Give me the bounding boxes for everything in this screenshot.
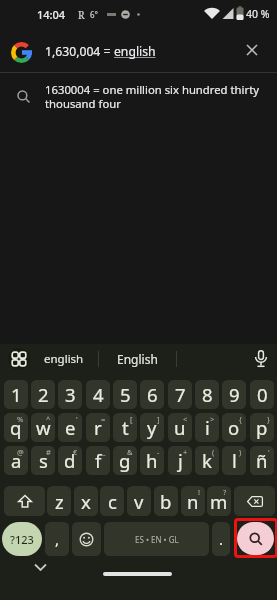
button[interactable]: z [47, 486, 71, 516]
staticText: - [157, 447, 160, 457]
button[interactable]: 3 [58, 380, 82, 409]
button[interactable]: 9 [222, 380, 246, 409]
button[interactable]: v [127, 486, 151, 516]
staticText: @ [17, 447, 24, 457]
button[interactable]: o [222, 413, 246, 442]
staticText: > [210, 414, 215, 424]
staticText: s [39, 448, 48, 473]
staticText: e [65, 415, 76, 440]
button[interactable]: m [207, 486, 231, 516]
staticText: ñ [256, 448, 268, 473]
button[interactable]: , [45, 522, 69, 556]
staticText: l [232, 448, 237, 473]
staticText: 1 [11, 382, 22, 407]
button[interactable] [253, 350, 269, 369]
staticText: [ [130, 414, 133, 424]
button[interactable]: h [140, 446, 164, 475]
button[interactable]: n [181, 486, 205, 516]
button[interactable] [0, 76, 277, 118]
button[interactable]: d [58, 446, 82, 475]
button[interactable]: ñ [250, 446, 274, 475]
staticText: v [134, 489, 144, 514]
button[interactable] [245, 43, 259, 57]
staticText: 4 [93, 382, 104, 407]
staticText: m [210, 489, 228, 514]
button[interactable]: ?123 [2, 522, 42, 556]
staticText: ES • EN • GL [135, 534, 179, 545]
staticText: 6 [147, 382, 158, 407]
button[interactable]: 2 [31, 380, 55, 409]
staticText: h [146, 448, 158, 473]
button[interactable]: 1 [4, 380, 28, 409]
staticText: # [46, 447, 51, 457]
button[interactable] [8, 348, 30, 370]
button[interactable]: x [74, 486, 98, 516]
staticText: 6° [90, 9, 98, 20]
button[interactable]: j [168, 446, 192, 475]
staticText: . [219, 529, 224, 549]
staticText: d [64, 448, 76, 473]
staticText: f [95, 448, 102, 473]
button[interactable]: 5 [113, 380, 137, 409]
staticText: & [127, 447, 133, 457]
button[interactable]: 7 [168, 380, 192, 409]
staticText: ( [212, 447, 215, 457]
button[interactable]: g [113, 446, 137, 475]
staticText: ! [198, 487, 201, 497]
staticText: ] [157, 414, 160, 424]
staticText: g [119, 448, 131, 473]
button[interactable]: y [140, 413, 164, 442]
staticText: j [178, 448, 183, 473]
button[interactable]: 0 [250, 380, 274, 409]
staticText: ? [223, 487, 227, 497]
staticText: 0 [257, 382, 268, 407]
button[interactable]: English [110, 344, 165, 374]
button[interactable]: c [100, 486, 124, 516]
staticText: < [183, 414, 188, 424]
button[interactable]: . [212, 522, 230, 556]
button[interactable] [237, 522, 274, 555]
staticText: i [205, 415, 210, 440]
button[interactable]: 6 [140, 380, 164, 409]
staticText: b [160, 489, 172, 514]
staticText: r [94, 415, 102, 440]
button[interactable] [234, 486, 275, 516]
button[interactable]: 1,630,004 = [45, 43, 156, 60]
button[interactable]: e [58, 413, 82, 442]
button[interactable] [11, 42, 32, 63]
button[interactable]: a [4, 446, 28, 475]
staticText: n [187, 489, 199, 514]
button[interactable]: r [86, 413, 110, 442]
staticText: € [73, 447, 78, 457]
staticText: = [101, 414, 106, 424]
button[interactable]: t [113, 413, 137, 442]
button[interactable]: english [36, 344, 91, 374]
button[interactable] [34, 563, 47, 573]
button[interactable] [4, 486, 45, 516]
button[interactable]: f [86, 446, 110, 475]
button[interactable] [72, 522, 101, 556]
button[interactable]: i [195, 413, 219, 442]
staticText: p [256, 415, 268, 440]
button[interactable]: k [195, 446, 219, 475]
staticText: 1630004 = one million six hundred thirty… [45, 82, 259, 111]
staticText: 40 % [246, 7, 270, 21]
button[interactable]: p [250, 413, 274, 442]
button[interactable]: w [31, 413, 55, 442]
button[interactable]: 4 [86, 380, 110, 409]
staticText: English [117, 351, 158, 367]
staticText: 5 [120, 382, 131, 407]
staticText: + [183, 447, 188, 457]
button[interactable]: s [31, 446, 55, 475]
button[interactable]: q [4, 413, 28, 442]
button[interactable]: 8 [195, 380, 219, 409]
button[interactable]: l [222, 446, 246, 475]
staticText: q [10, 415, 22, 440]
button[interactable]: ES • EN • GL [104, 522, 209, 556]
staticText: ' [268, 447, 270, 457]
staticText: w [36, 415, 51, 440]
staticText: 8 [202, 382, 213, 407]
button[interactable]: b [154, 486, 178, 516]
button[interactable]: u [168, 413, 192, 442]
staticText: a [11, 448, 22, 473]
